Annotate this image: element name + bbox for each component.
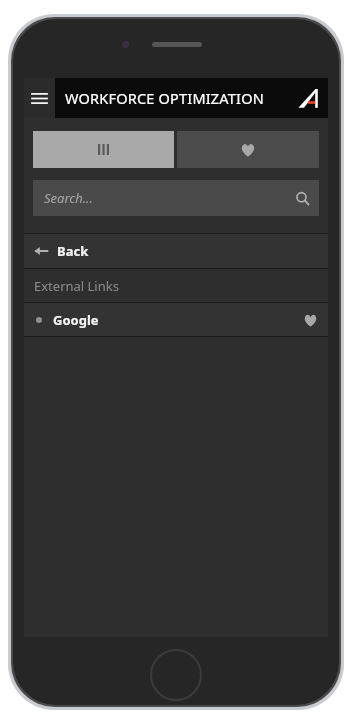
button[interactable]: Search... <box>33 180 319 216</box>
button[interactable]: Google <box>24 303 328 336</box>
staticText: External Links <box>34 277 119 295</box>
button[interactable]: Add Google to favourites <box>295 305 325 335</box>
button[interactable]: Favourites tab <box>177 131 319 168</box>
staticText: Search... <box>44 189 93 207</box>
staticText: Back <box>57 242 89 260</box>
button[interactable]: Open navigation menu <box>24 78 55 118</box>
button[interactable]: All items tab <box>33 131 174 168</box>
staticText: WORKFORCE OPTIMIZATION <box>65 88 264 108</box>
staticText: Google <box>53 311 99 329</box>
button[interactable]: Company logo <box>293 83 323 113</box>
button[interactable]: Back <box>24 234 328 268</box>
other: Search <box>288 184 316 212</box>
